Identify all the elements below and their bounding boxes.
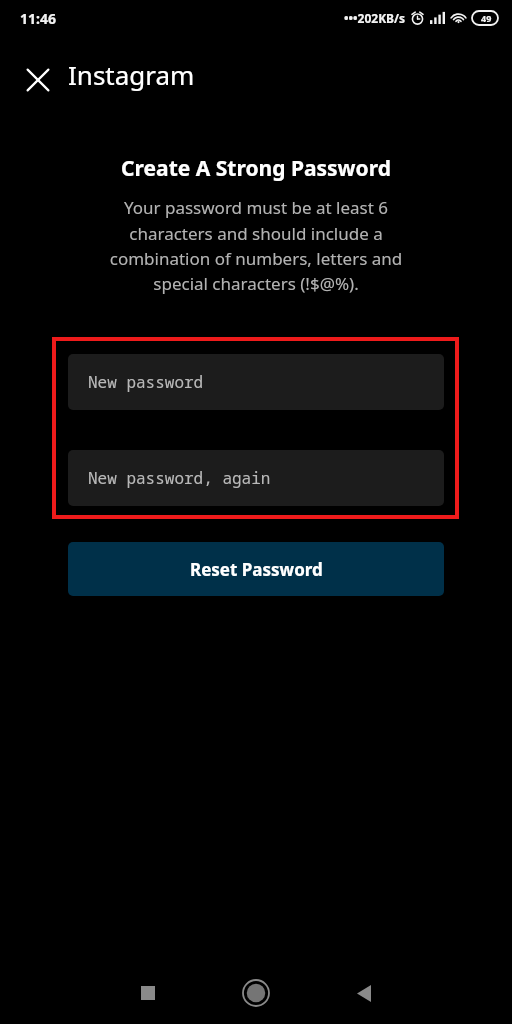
staticText: Reset Password — [190, 558, 323, 581]
staticText: •••202KB/s — [344, 10, 406, 26]
button[interactable]: Back — [342, 971, 386, 1015]
button[interactable]: Home — [233, 970, 279, 1016]
staticText: Instagram — [68, 57, 195, 92]
staticText: Your password must be at least 6 charact… — [84, 196, 428, 295]
button[interactable]: New password — [68, 354, 444, 410]
staticText: 11:46 — [20, 9, 56, 28]
staticText: New password — [88, 371, 204, 393]
button[interactable]: Recent apps — [126, 971, 170, 1015]
button[interactable]: Close — [14, 56, 62, 104]
staticText: 49 — [481, 12, 492, 24]
button[interactable]: New password, again — [68, 450, 444, 506]
button[interactable]: Reset Password — [68, 542, 444, 596]
staticText: Create A Strong Password — [0, 154, 512, 183]
staticText: New password, again — [88, 467, 271, 489]
